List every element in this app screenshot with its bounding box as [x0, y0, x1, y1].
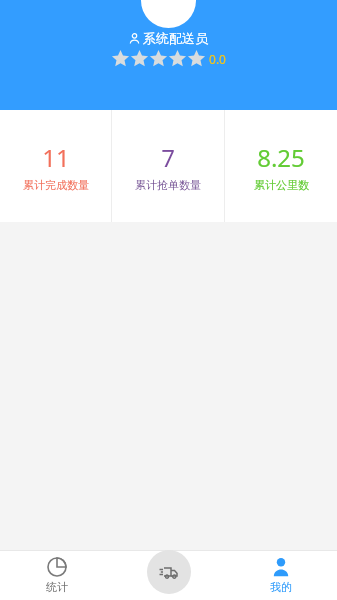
button[interactable]: 统计 [0, 551, 113, 600]
button[interactable]: 我的 [225, 551, 337, 600]
button[interactable]: 首页 [113, 551, 225, 600]
staticText: 我的 [270, 580, 292, 594]
staticText: 首页 [158, 578, 180, 592]
button[interactable]: Home [147, 550, 191, 594]
staticText: 8.25 [257, 141, 305, 174]
button[interactable]: 7 [112, 110, 224, 222]
staticText: 累计抢单数量 [135, 178, 201, 192]
staticText: 11 [42, 141, 70, 174]
staticText: 系统配送员 [143, 30, 208, 46]
staticText: 0.0 [209, 51, 226, 67]
button[interactable]: 8.25 [225, 110, 337, 222]
staticText: 统计 [46, 580, 68, 594]
staticText: 7 [161, 141, 175, 174]
staticText: 累计完成数量 [23, 178, 89, 192]
staticText: 累计公里数 [254, 178, 309, 192]
button[interactable]: Profile photo [141, 0, 196, 28]
button[interactable]: 11 [0, 110, 111, 222]
